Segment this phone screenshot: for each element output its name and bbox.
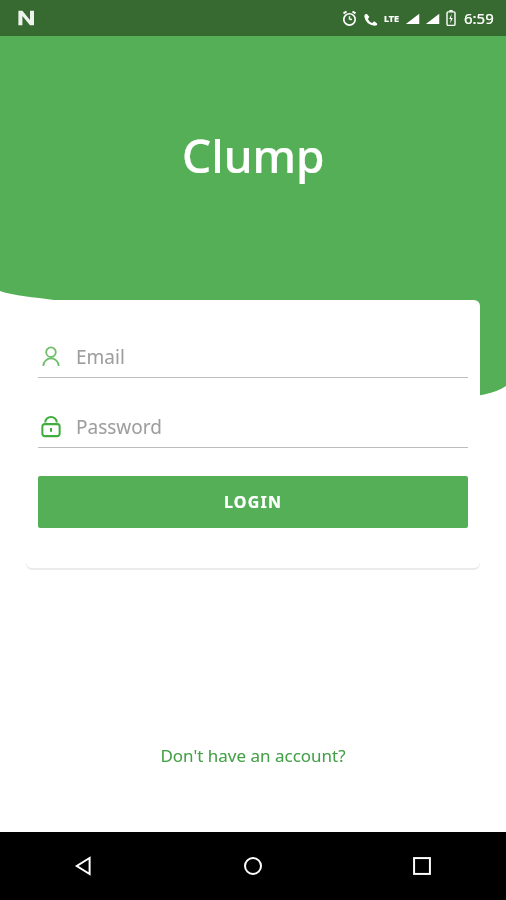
button[interactable]: Recents (337, 832, 506, 900)
button[interactable]: Home (168, 832, 337, 900)
staticText: Password (76, 414, 162, 440)
button[interactable]: LOGIN (38, 476, 468, 528)
staticText: 6:59 (464, 8, 494, 28)
staticText: Clump (182, 124, 325, 187)
staticText: LOGIN (224, 491, 283, 513)
staticText: Email (76, 344, 125, 370)
staticText: LTE (384, 12, 400, 24)
button[interactable]: Back (0, 832, 168, 900)
staticText: Don't have an account? (160, 744, 346, 767)
button[interactable]: Don't have an account? (148, 738, 358, 773)
